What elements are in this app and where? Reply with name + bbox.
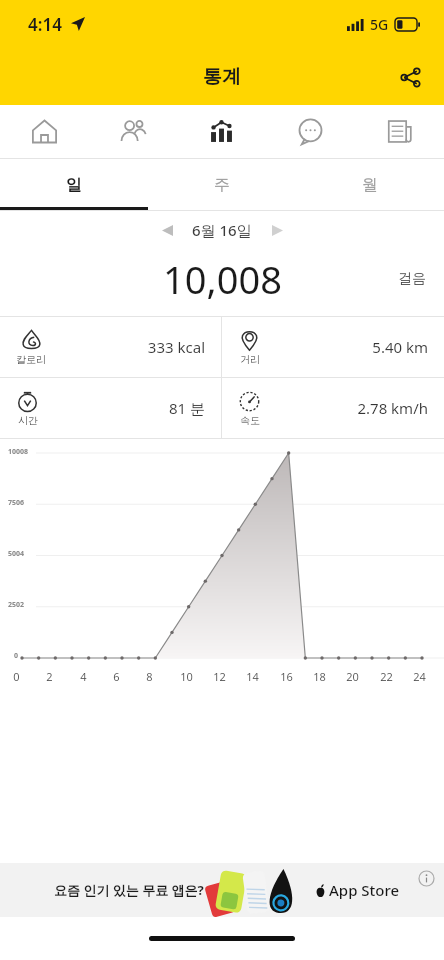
staticText: 333 kcal: [46, 337, 205, 357]
staticText: 5G: [370, 15, 389, 34]
staticText: 4:14: [28, 13, 62, 36]
staticText: 6: [113, 669, 120, 683]
staticText: 14: [246, 669, 259, 683]
button[interactable]: 일: [0, 159, 148, 210]
button[interactable]: 거리: [222, 317, 444, 377]
staticText: 월: [362, 175, 378, 195]
staticText: 4: [80, 669, 87, 683]
button[interactable]: Previous day: [150, 213, 184, 247]
staticText: 6월 16일: [192, 220, 252, 240]
button[interactable]: 주: [148, 159, 296, 210]
staticText: 0: [13, 669, 20, 683]
staticText: 0: [14, 651, 19, 661]
staticText: 10: [180, 669, 193, 683]
staticText: 거리: [240, 353, 260, 366]
staticText: 24: [413, 669, 426, 683]
button[interactable]: Chat: [266, 105, 355, 158]
staticText: 통계: [203, 65, 241, 89]
staticText: 일: [66, 175, 82, 195]
staticText: 12: [213, 669, 226, 683]
button[interactable]: News: [355, 105, 444, 158]
staticText: 속도: [240, 414, 260, 427]
staticText: 16: [280, 669, 293, 683]
staticText: 2.78 km/h: [261, 398, 428, 418]
staticText: 81 분: [39, 398, 205, 418]
staticText: 22: [380, 669, 393, 683]
staticText: 시간: [18, 414, 38, 427]
staticText: 18: [313, 669, 326, 683]
staticText: 8: [146, 669, 153, 683]
button[interactable]: 월: [296, 159, 444, 210]
button[interactable]: Next day: [260, 213, 294, 247]
button[interactable]: 시간: [0, 378, 221, 438]
button[interactable]: 칼로리: [0, 317, 221, 377]
staticText: 20: [346, 669, 359, 683]
button[interactable]: 속도: [222, 378, 444, 438]
staticText: App Store: [329, 880, 400, 900]
staticText: 2502: [8, 600, 25, 610]
button[interactable]: Friends: [88, 105, 177, 158]
button[interactable]: 요즘 인기 있는 무료 앱은?: [0, 863, 444, 917]
staticText: 7506: [8, 498, 25, 508]
staticText: 칼로리: [16, 353, 46, 366]
staticText: 2: [46, 669, 53, 683]
button[interactable]: Statistics: [177, 105, 266, 158]
button[interactable]: Share: [388, 55, 432, 99]
staticText: 요즘 인기 있는 무료 앱은?: [54, 881, 204, 899]
staticText: 5.40 km: [261, 337, 428, 357]
staticText: 10,008: [163, 253, 282, 305]
button[interactable]: Ad info: [416, 868, 436, 888]
staticText: 5004: [8, 549, 25, 559]
staticText: 10008: [8, 447, 29, 457]
staticText: 주: [214, 175, 230, 195]
button[interactable]: Home: [0, 105, 88, 158]
staticText: 걸음: [398, 270, 426, 288]
